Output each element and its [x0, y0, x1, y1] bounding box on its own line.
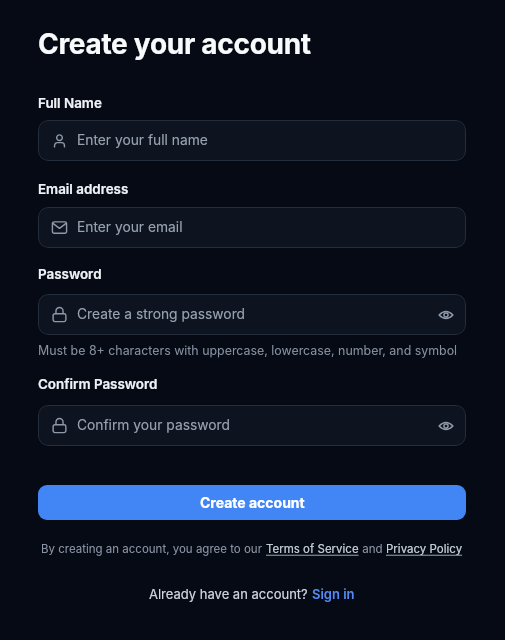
button[interactable]: Enter your email — [38, 207, 466, 248]
staticText: Already have an account? — [149, 586, 312, 602]
staticText: Confirm Password — [38, 376, 158, 392]
button[interactable]: Enter your full name — [38, 120, 466, 161]
staticText: Full Name — [38, 95, 102, 111]
staticText: Enter your full name — [77, 132, 466, 149]
button[interactable] — [427, 407, 465, 445]
staticText: Email address — [38, 181, 129, 197]
staticText: Create account — [200, 494, 305, 511]
button[interactable]: Create account — [38, 485, 466, 520]
staticText: Enter your email — [77, 219, 466, 236]
button[interactable]: Terms of Service — [266, 542, 359, 556]
staticText: By creating an account, you agree to our — [41, 542, 266, 556]
staticText: Password — [38, 266, 102, 282]
staticText: Create a strong password — [77, 306, 427, 323]
button[interactable]: Confirm your password — [38, 405, 466, 446]
staticText: Confirm your password — [77, 417, 427, 434]
button[interactable]: Create a strong password — [38, 294, 466, 335]
staticText: Must be 8+ characters with uppercase, lo… — [38, 343, 458, 358]
button[interactable]: Sign in — [312, 586, 355, 602]
button[interactable]: Privacy Policy — [386, 542, 463, 556]
button[interactable] — [427, 296, 465, 334]
staticText: Create your account — [38, 27, 311, 61]
staticText: and — [359, 542, 386, 556]
